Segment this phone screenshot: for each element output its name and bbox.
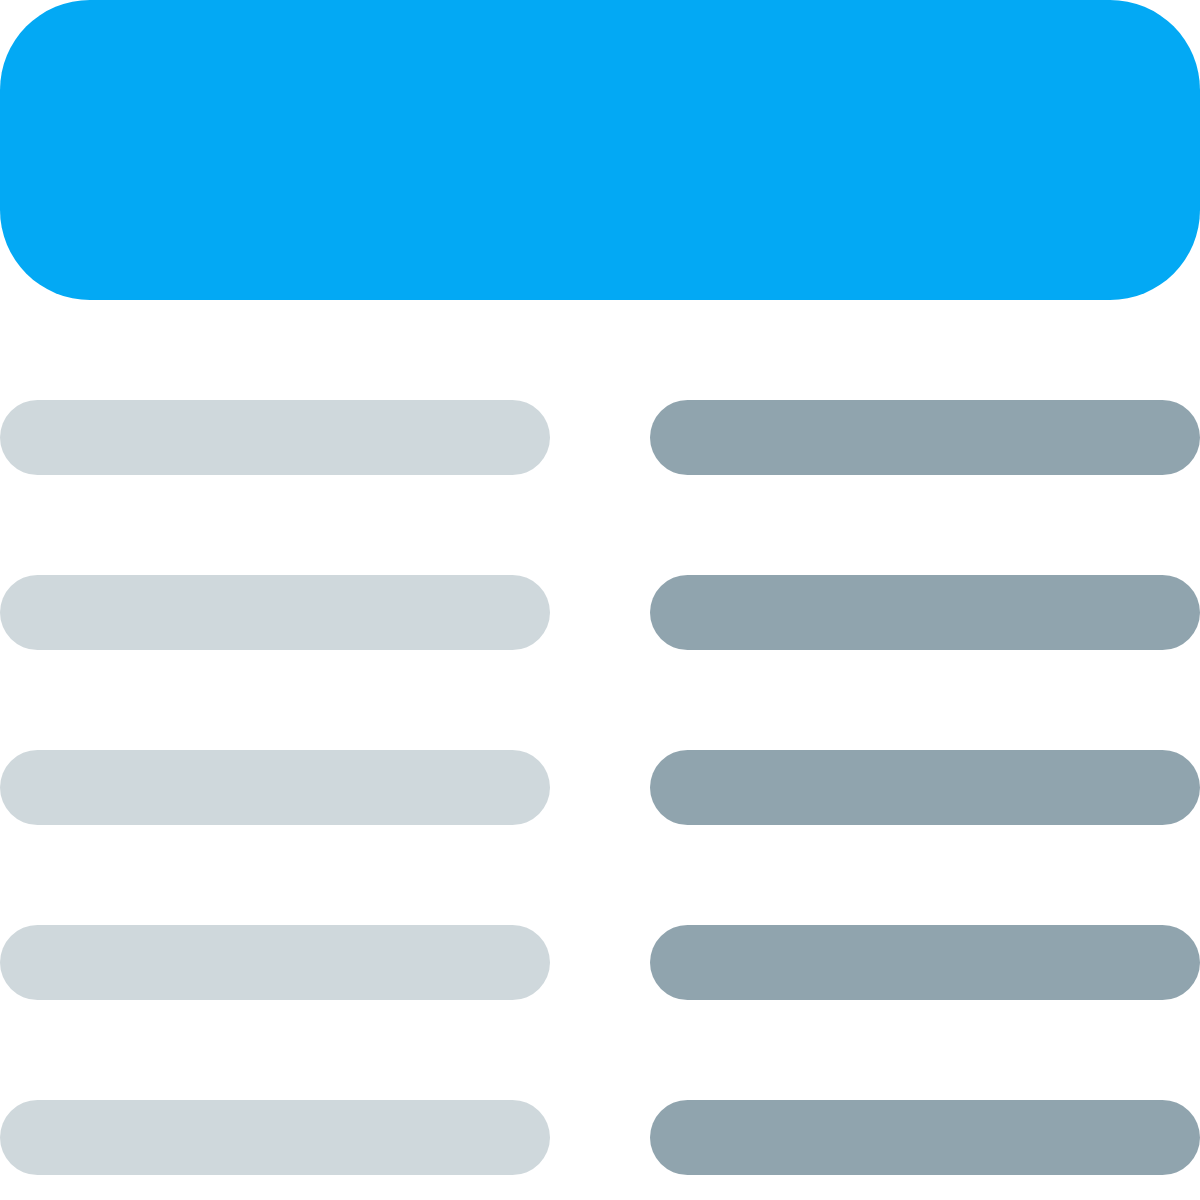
button[interactable]: List item 2 [0,575,1200,650]
button[interactable]: List item 1 [0,400,1200,475]
button[interactable]: Featured header [0,0,1200,300]
button[interactable]: List item 3 [0,750,1200,825]
button[interactable]: List item 5 [0,1100,1200,1175]
button[interactable]: List item 4 [0,925,1200,1000]
